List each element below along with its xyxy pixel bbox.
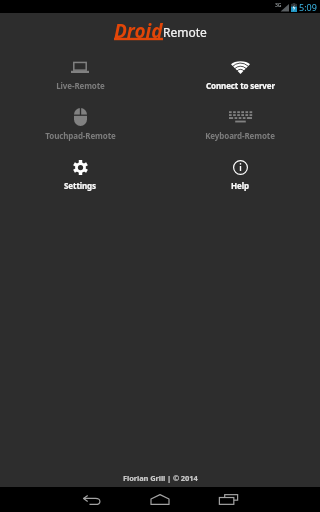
staticText: Droid: [114, 18, 163, 44]
button[interactable]: Connect to server: [160, 49, 320, 99]
button[interactable]: Recent apps: [204, 487, 252, 512]
button[interactable]: Help: [160, 149, 320, 199]
staticText: 5:09: [299, 1, 317, 13]
button[interactable]: Back: [68, 487, 116, 512]
button[interactable]: Live-Remote: [0, 49, 160, 99]
staticText: Settings: [64, 180, 96, 191]
staticText: 3G: [275, 2, 282, 9]
button[interactable]: Touchpad-Remote: [0, 99, 160, 149]
staticText: Florian Grill | © 2014: [123, 473, 198, 483]
staticText: Keyboard-Remote: [205, 130, 275, 141]
staticText: Live-Remote: [56, 80, 105, 91]
button[interactable]: Home: [136, 487, 184, 512]
button[interactable]: Keyboard-Remote: [160, 99, 320, 149]
staticText: Touchpad-Remote: [45, 130, 116, 141]
staticText: Connect to server: [206, 80, 275, 91]
staticText: Help: [231, 180, 249, 191]
button[interactable]: Settings: [0, 149, 160, 199]
staticText: Remote: [163, 24, 207, 40]
